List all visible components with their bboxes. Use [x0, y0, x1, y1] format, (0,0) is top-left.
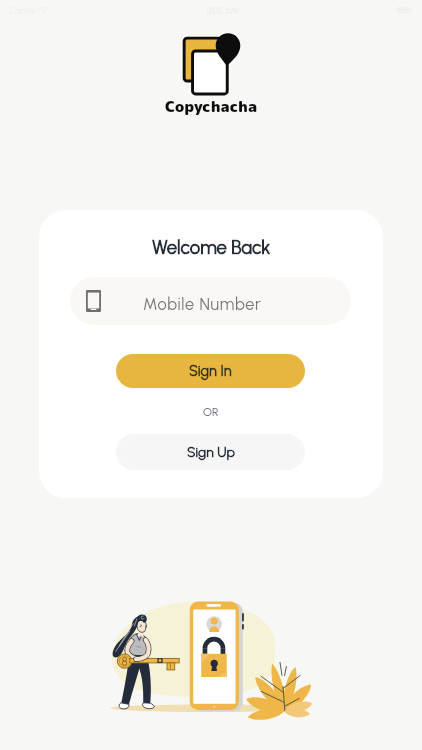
- staticText: Sign In: [189, 362, 232, 380]
- button[interactable]: Mobile Number: [70, 277, 351, 325]
- staticText: Sign Up: [187, 444, 235, 461]
- staticText: 11:05 AM: [206, 5, 239, 16]
- staticText: Copychacha: [165, 95, 258, 117]
- staticText: Welcome Back: [152, 236, 271, 258]
- button[interactable]: Sign Up: [116, 434, 305, 470]
- button[interactable]: Sign In: [116, 354, 305, 388]
- staticText: Mobile Number: [143, 295, 262, 315]
- staticText: OR: [203, 405, 219, 419]
